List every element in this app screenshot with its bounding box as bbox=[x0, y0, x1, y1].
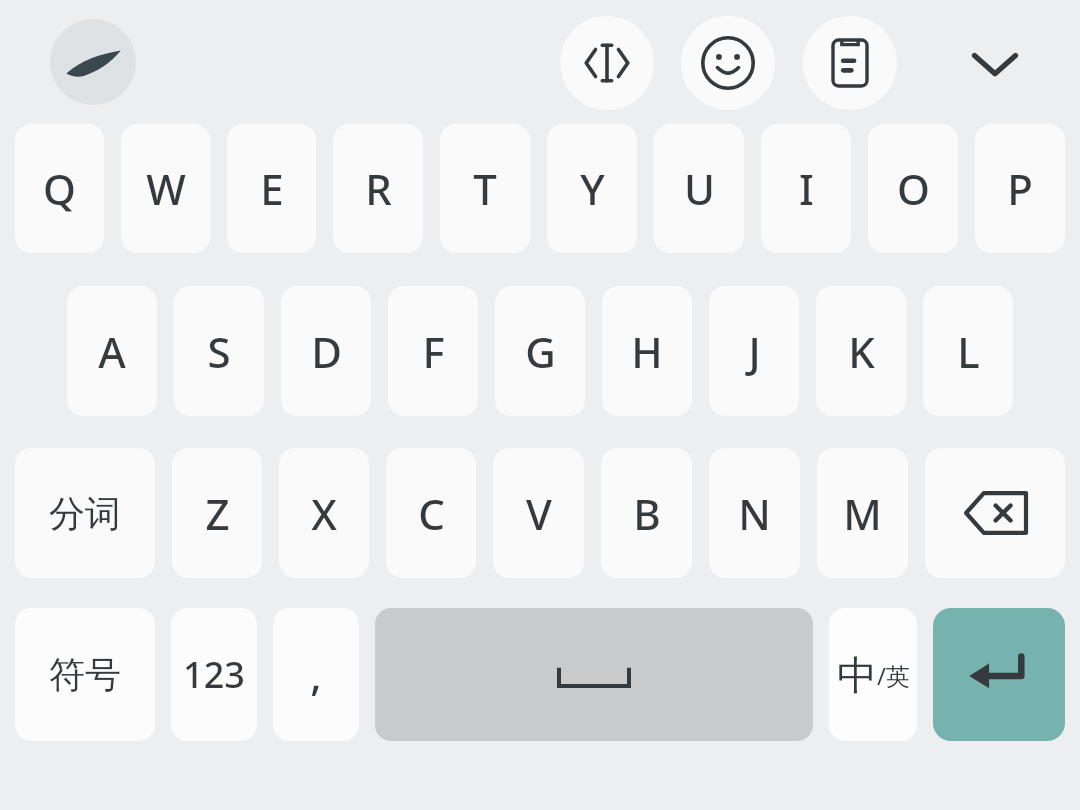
button[interactable]: P bbox=[975, 124, 1065, 253]
staticText: G bbox=[525, 323, 556, 380]
button[interactable]: J bbox=[709, 286, 799, 416]
staticText: P bbox=[1007, 160, 1033, 217]
button[interactable]: X bbox=[279, 448, 369, 578]
staticText: E bbox=[260, 160, 284, 217]
staticText: N bbox=[738, 485, 771, 542]
button[interactable]: K bbox=[816, 286, 906, 416]
button[interactable]: F bbox=[388, 286, 478, 416]
staticText: M bbox=[843, 485, 882, 542]
button[interactable]: C bbox=[386, 448, 476, 578]
staticText: F bbox=[422, 323, 445, 380]
staticText: 符号 bbox=[49, 652, 121, 697]
button[interactable]: T bbox=[440, 124, 530, 253]
staticText: X bbox=[311, 485, 337, 542]
button[interactable]: 符号 bbox=[15, 608, 155, 741]
button[interactable]: N bbox=[709, 448, 800, 578]
button[interactable]: 分词 bbox=[15, 448, 155, 578]
button[interactable]: Enter bbox=[933, 608, 1065, 741]
button[interactable]: Hide keyboard bbox=[948, 16, 1042, 110]
staticText: Q bbox=[43, 160, 76, 217]
staticText: R bbox=[365, 160, 392, 217]
button[interactable]: E bbox=[227, 124, 316, 253]
button[interactable]: O bbox=[868, 124, 958, 253]
staticText: O bbox=[897, 160, 930, 217]
staticText: Z bbox=[205, 485, 230, 542]
button[interactable]: A bbox=[67, 286, 157, 416]
staticText: S bbox=[207, 323, 231, 380]
staticText: 123 bbox=[183, 650, 245, 699]
staticText: D bbox=[311, 323, 342, 380]
button[interactable]: 123 bbox=[171, 608, 257, 741]
button[interactable]: 中 bbox=[829, 608, 917, 741]
button[interactable]: R bbox=[333, 124, 423, 253]
staticText: /英 bbox=[877, 659, 910, 692]
staticText: 中 bbox=[837, 650, 877, 700]
button[interactable]: I bbox=[761, 124, 851, 253]
staticText: W bbox=[146, 160, 186, 217]
button[interactable]: W bbox=[121, 124, 210, 253]
button[interactable]: Space bbox=[375, 608, 813, 741]
button[interactable]: Z bbox=[172, 448, 262, 578]
staticText: J bbox=[748, 323, 761, 380]
button[interactable]: , bbox=[273, 608, 359, 741]
button[interactable]: Input method logo bbox=[50, 19, 136, 105]
button[interactable]: G bbox=[495, 286, 585, 416]
staticText: H bbox=[631, 323, 663, 380]
button[interactable]: H bbox=[602, 286, 692, 416]
button[interactable]: Move cursor bbox=[560, 16, 654, 110]
button[interactable]: Q bbox=[15, 124, 104, 253]
staticText: 分词 bbox=[49, 491, 121, 536]
staticText: T bbox=[473, 160, 497, 217]
button[interactable]: B bbox=[601, 448, 692, 578]
staticText: C bbox=[418, 485, 445, 542]
button[interactable]: Backspace bbox=[925, 448, 1065, 578]
button[interactable]: D bbox=[281, 286, 371, 416]
button[interactable]: Clipboard bbox=[803, 16, 897, 110]
button[interactable]: L bbox=[923, 286, 1013, 416]
button[interactable]: Emoji bbox=[681, 16, 775, 110]
staticText: , bbox=[310, 646, 322, 703]
staticText: B bbox=[633, 485, 661, 542]
button[interactable]: U bbox=[654, 124, 744, 253]
button[interactable]: S bbox=[174, 286, 264, 416]
button[interactable]: M bbox=[817, 448, 908, 578]
staticText: A bbox=[98, 323, 126, 380]
staticText: I bbox=[799, 160, 814, 217]
staticText: U bbox=[684, 160, 715, 217]
staticText: L bbox=[957, 323, 980, 380]
staticText: V bbox=[526, 485, 552, 542]
staticText: K bbox=[848, 323, 875, 380]
staticText: Y bbox=[580, 160, 605, 217]
button[interactable]: Y bbox=[547, 124, 637, 253]
button[interactable]: V bbox=[493, 448, 584, 578]
